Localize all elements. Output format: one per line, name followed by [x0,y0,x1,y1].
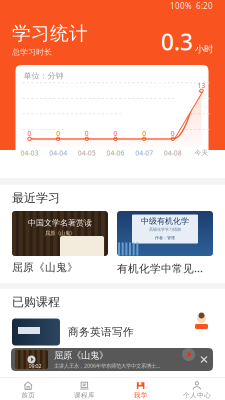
button[interactable]: 中级有机化学 [117,211,213,271]
button[interactable]: 个人中心 [169,378,225,399]
button[interactable]: 中国文学名著赏读 [12,211,108,271]
staticText: 中国文学名著赏读 [28,218,92,228]
staticText: 100% 6:20 [170,1,213,11]
staticText: 04-08 [164,148,182,157]
staticText: 0 [56,129,60,138]
staticText: 首页 [21,391,35,399]
staticText: 0 [171,129,175,138]
staticText: 04-05 [78,148,96,157]
staticText: 今天 [194,149,208,157]
staticText: 屈原《山鬼》 [54,350,108,361]
staticText: 作者：管理 [155,235,175,240]
staticText: 0 [142,129,146,138]
staticText: 屈原《山鬼》 [45,230,75,236]
staticText: 0.3 [161,27,193,57]
button[interactable]: 09:02 [0,348,225,371]
staticText: 课程库 [74,391,95,399]
staticText: 学习统计 [12,22,88,45]
staticText: 主讲人王永，2006年华东师范大学中文系博士… [54,362,160,369]
staticText: 09:02 [28,362,41,370]
button[interactable]: 个人助手 [190,309,212,331]
staticText: 屈原《山鬼》 [12,261,78,274]
staticText: 已购课程 [12,295,60,309]
staticText: 高级化学学习指南 [149,227,181,232]
staticText: 个人中心 [183,391,211,399]
staticText: 单位：分钟 [23,71,63,81]
staticText: 商务英语写作 [68,325,134,338]
button[interactable]: 课程库 [56,378,112,399]
staticText: 0 [113,129,117,138]
staticText: 04-04 [49,148,67,157]
staticText: 最近学习 [12,191,60,205]
staticText: 04-07 [135,148,153,157]
staticText: 04-03 [20,148,38,157]
staticText: 总学习时长 [12,47,52,57]
staticText: 13 [197,81,205,90]
staticText: 小时 [195,43,213,55]
staticText: 0 [85,129,89,138]
staticText: 我学 [134,391,148,399]
staticText: 中级有机化学 [141,216,189,226]
staticText: 有机化学中常见元素 [117,261,213,275]
button[interactable]: 我学 [112,378,169,399]
staticText: 04-06 [106,148,124,157]
staticText: 0 [27,129,31,138]
button[interactable]: 商务英语写作 [0,315,225,349]
button[interactable]: 首页 [0,378,56,399]
